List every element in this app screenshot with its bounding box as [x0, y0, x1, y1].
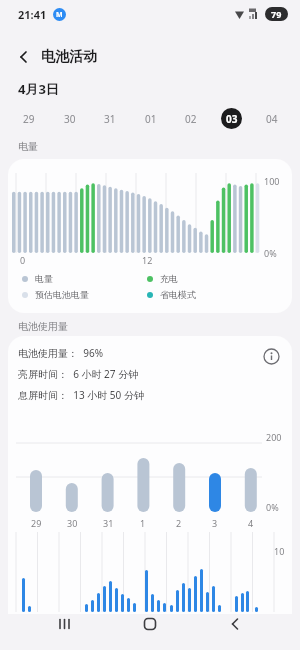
staticText: 电池活动 — [41, 48, 97, 66]
staticText: 充电 — [160, 273, 178, 284]
staticText: 100 — [264, 175, 280, 187]
button[interactable]: 31 — [99, 108, 120, 129]
staticText: 3 — [212, 517, 218, 529]
staticText: 0 — [20, 254, 26, 266]
staticText: 亮屏时间： 6 小时 27 分钟 — [18, 367, 139, 381]
button[interactable]: 29 — [18, 108, 39, 129]
staticText: 21:41 — [18, 7, 47, 22]
staticText: 01 — [145, 112, 157, 126]
staticText: 31 — [103, 517, 114, 529]
staticText: 0% — [266, 501, 279, 513]
button[interactable] — [228, 617, 242, 631]
staticText: 30 — [64, 112, 76, 126]
staticText: 79 — [271, 8, 282, 20]
button[interactable] — [263, 348, 280, 365]
staticText: 29 — [23, 112, 35, 126]
staticText: 电池使用量 — [18, 320, 68, 333]
staticText: 29 — [31, 517, 42, 529]
button[interactable]: 电池使用量： 96% — [8, 336, 292, 650]
staticText: 4月3日 — [18, 80, 59, 98]
staticText: 预估电池电量 — [35, 289, 89, 300]
staticText: 1 — [140, 517, 146, 529]
staticText: 2 — [176, 517, 182, 529]
button[interactable] — [58, 617, 72, 631]
staticText: 省电模式 — [160, 289, 196, 300]
button[interactable]: 02 — [180, 108, 201, 129]
staticText: 04 — [266, 112, 278, 126]
button[interactable]: 01 — [140, 108, 161, 129]
staticText: 30 — [67, 517, 78, 529]
button[interactable]: 04 — [261, 108, 282, 129]
staticText: 息屏时间： 13 小时 50 分钟 — [18, 388, 144, 402]
staticText: 电量 — [35, 273, 53, 284]
staticText: 电池使用量： 96% — [18, 346, 103, 360]
staticText: 电量 — [18, 140, 38, 153]
button[interactable] — [18, 51, 30, 63]
button[interactable]: 03 — [221, 108, 242, 129]
staticText: 12 — [142, 254, 153, 266]
staticText: 200 — [266, 431, 282, 443]
staticText: 03 — [226, 112, 238, 126]
staticText: 4 — [248, 517, 254, 529]
button[interactable] — [143, 617, 157, 631]
staticText: 02 — [185, 112, 197, 126]
staticText: 31 — [104, 112, 116, 126]
staticText: 0% — [264, 247, 277, 259]
button[interactable]: 100 — [8, 159, 292, 313]
staticText: M — [56, 10, 63, 20]
button[interactable]: 30 — [59, 108, 80, 129]
staticText: 10 — [274, 545, 285, 557]
